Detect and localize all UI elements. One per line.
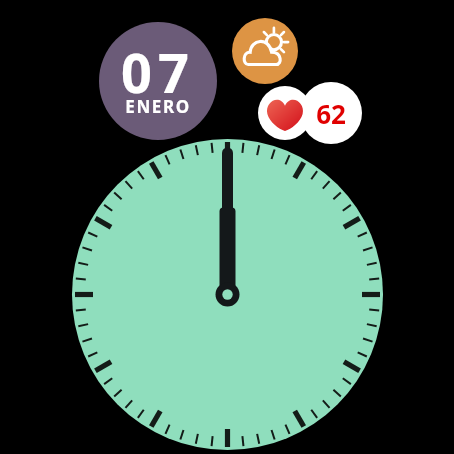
button[interactable]: Heart rate 62: [300, 82, 362, 144]
staticText: 62: [316, 96, 346, 131]
button[interactable]: Date, 07 Enero: [99, 22, 217, 140]
staticText: ENERO: [125, 95, 191, 118]
staticText: 07: [121, 35, 195, 109]
button[interactable]: Weather, partly cloudy: [232, 18, 298, 84]
button[interactable]: Heart rate sensor: [258, 86, 312, 140]
